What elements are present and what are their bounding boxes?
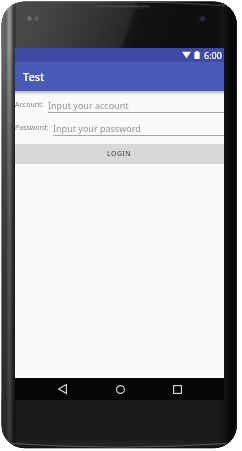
staticText: Input your account [48, 99, 129, 111]
staticText: 6:00 [204, 49, 222, 61]
staticText: Input your password [53, 122, 141, 134]
button[interactable]: LOGIN [15, 144, 224, 164]
button[interactable]: Home [109, 378, 131, 400]
staticText: Account: [15, 100, 44, 110]
staticText: Test [23, 69, 45, 84]
staticText: Password: [15, 123, 49, 133]
staticText: LOGIN [107, 149, 132, 159]
button[interactable]: Recent apps [166, 378, 188, 400]
button[interactable]: Back [51, 378, 73, 400]
